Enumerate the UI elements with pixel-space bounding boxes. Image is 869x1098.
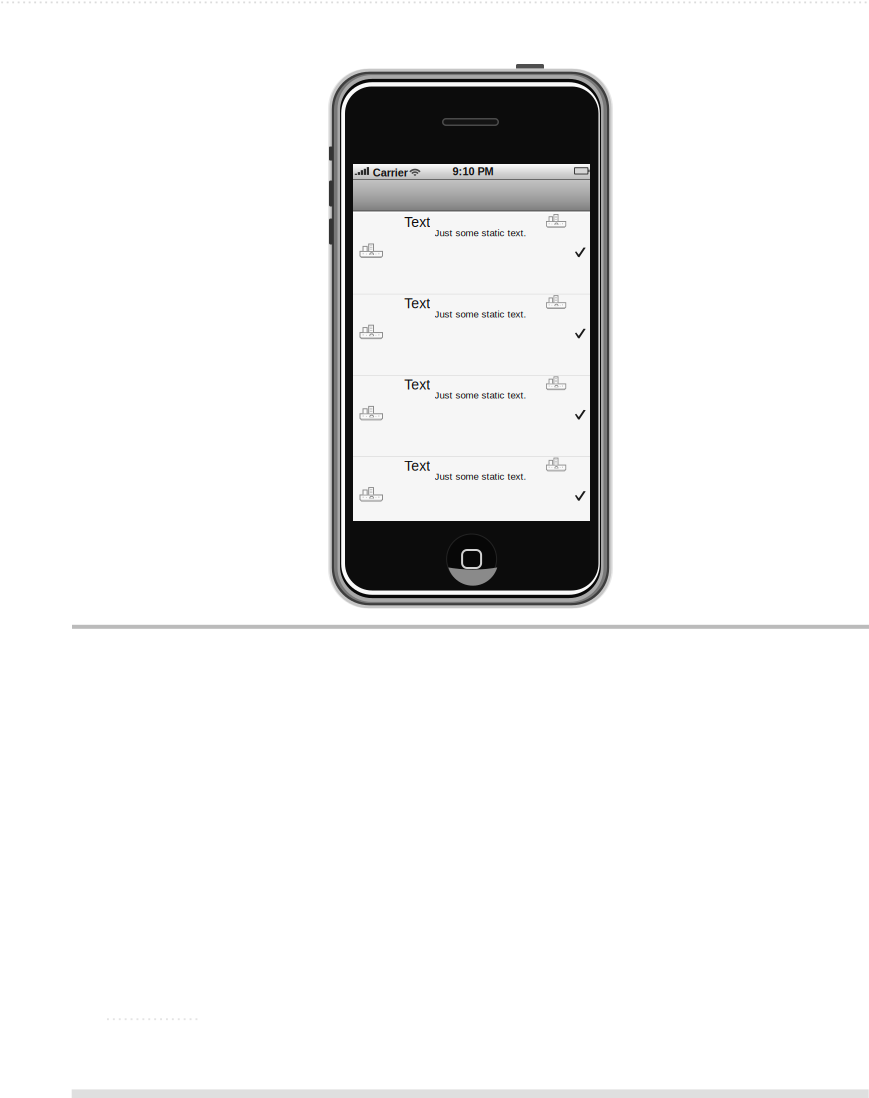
staticText: Just some static text. bbox=[434, 227, 526, 238]
staticText: 9:10 PM bbox=[452, 165, 493, 177]
button[interactable]: Text bbox=[353, 294, 590, 376]
staticText: Just some static text. bbox=[434, 309, 526, 319]
staticText: Text bbox=[404, 296, 430, 311]
button[interactable]: Text bbox=[353, 376, 590, 457]
staticText: Just some static text. bbox=[434, 390, 526, 401]
staticText: Text bbox=[404, 377, 430, 392]
staticText: Text bbox=[404, 458, 430, 474]
staticText: Text bbox=[404, 214, 430, 230]
staticText: Carrier bbox=[373, 167, 408, 179]
button[interactable]: Text bbox=[353, 457, 590, 538]
staticText: Just some static text. bbox=[434, 471, 526, 482]
button[interactable]: Text bbox=[353, 213, 590, 294]
